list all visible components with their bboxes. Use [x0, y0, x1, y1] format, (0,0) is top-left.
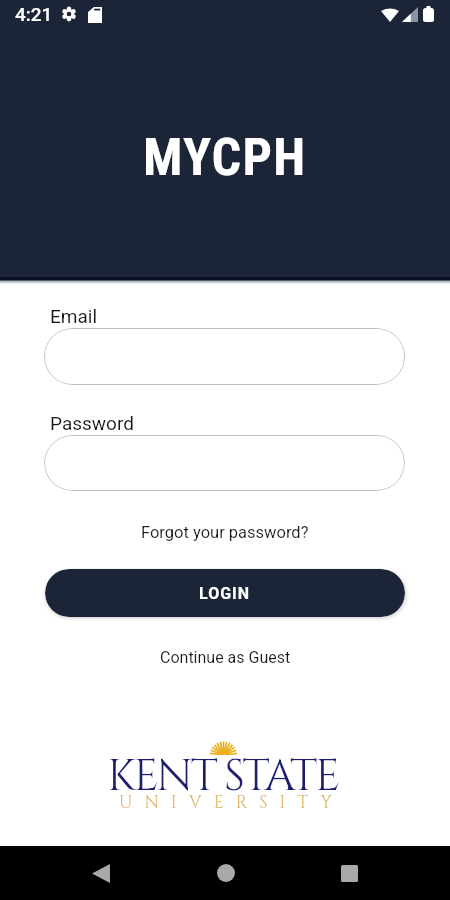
- button[interactable]: Recent apps: [322, 846, 377, 900]
- staticText: 4:21: [15, 3, 53, 25]
- staticText: KENT STATE: [107, 747, 338, 806]
- button[interactable]: Back: [73, 846, 128, 900]
- staticText: Email: [50, 305, 98, 327]
- staticText: LOGIN: [199, 584, 251, 603]
- button[interactable]: Home: [198, 846, 253, 900]
- button[interactable]: [44, 435, 405, 491]
- staticText: Forgot your password?: [141, 523, 309, 542]
- staticText: Continue as Guest: [160, 648, 291, 667]
- staticText: Password: [50, 412, 134, 434]
- button[interactable]: Forgot your password?: [131, 518, 319, 547]
- button[interactable]: LOGIN: [45, 569, 405, 617]
- staticText: UNIVERSITY: [119, 791, 344, 814]
- staticText: MYCPH: [143, 127, 307, 188]
- button[interactable]: Continue as Guest: [150, 643, 301, 672]
- button[interactable]: [44, 328, 405, 385]
